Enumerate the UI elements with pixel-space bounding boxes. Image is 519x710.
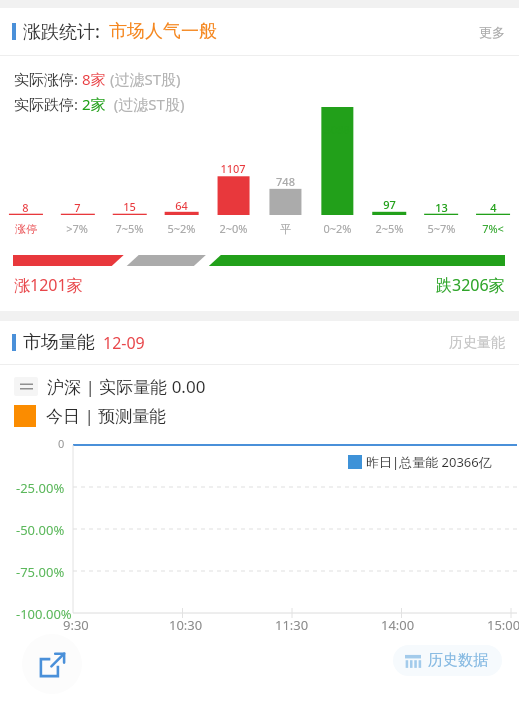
staticText: 13 bbox=[435, 200, 448, 215]
staticText: 昨日|总量能 20366亿 bbox=[366, 453, 492, 471]
staticText: >7% bbox=[66, 221, 88, 236]
staticText: (过滤ST股) bbox=[106, 69, 181, 89]
staticText: 5~7% bbox=[427, 221, 456, 236]
staticText: -75.00% bbox=[16, 563, 65, 581]
staticText: 64 bbox=[175, 198, 188, 213]
staticText: 1107 bbox=[220, 161, 246, 176]
staticText: 今日 | 预测量能 bbox=[46, 404, 167, 427]
staticText: 历史量能 bbox=[449, 334, 505, 352]
staticText: 跌3206家 bbox=[436, 274, 505, 296]
staticText: 0~2% bbox=[323, 221, 352, 236]
staticText: 14:00 bbox=[381, 616, 415, 634]
staticText: 市场量能 bbox=[23, 331, 95, 354]
staticText: 7~5% bbox=[115, 221, 144, 236]
staticText: 97 bbox=[383, 197, 396, 212]
staticText: 0 bbox=[58, 436, 65, 451]
staticText: 12-09 bbox=[103, 332, 145, 354]
staticText: 更多 bbox=[479, 24, 505, 40]
staticText: 15 bbox=[123, 199, 136, 214]
staticText: 8 bbox=[22, 200, 29, 215]
staticText: 2~5% bbox=[375, 221, 404, 236]
staticText: (过滤ST股) bbox=[106, 94, 185, 114]
staticText: 实际跌停: bbox=[14, 94, 82, 114]
staticText: 涨停 bbox=[15, 222, 37, 236]
staticText: 4 bbox=[490, 200, 497, 215]
staticText: -25.00% bbox=[16, 479, 65, 497]
staticText: 平 bbox=[280, 222, 291, 236]
staticText: 历史数据 bbox=[428, 651, 488, 670]
staticText: 748 bbox=[276, 174, 295, 189]
staticText: 实际涨停: bbox=[14, 69, 82, 89]
staticText: 9:30 bbox=[63, 616, 89, 634]
staticText: 沪深 | 实际量能 0.00 bbox=[47, 375, 206, 398]
button[interactable]: 涨跌统计: bbox=[0, 8, 519, 55]
staticText: 7%< bbox=[482, 221, 504, 236]
staticText: 2~0% bbox=[219, 221, 248, 236]
button[interactable]: 市场量能 bbox=[0, 321, 519, 364]
button[interactable]: 历史数据 bbox=[393, 645, 502, 676]
staticText: 涨跌统计: bbox=[23, 19, 100, 44]
staticText: 2家 bbox=[82, 94, 106, 114]
staticText: 涨1201家 bbox=[14, 274, 83, 296]
staticText: 市场人气一般 bbox=[109, 20, 217, 43]
staticText: -100.00% bbox=[16, 605, 72, 623]
staticText: -50.00% bbox=[16, 521, 65, 539]
staticText: 11:30 bbox=[275, 616, 309, 634]
staticText: 8家 bbox=[82, 69, 106, 89]
staticText: 5~2% bbox=[167, 221, 196, 236]
staticText: 7 bbox=[74, 200, 81, 215]
button[interactable]: Share bbox=[22, 634, 82, 694]
staticText: 15:00 bbox=[487, 616, 519, 634]
staticText: 10:30 bbox=[169, 616, 203, 634]
